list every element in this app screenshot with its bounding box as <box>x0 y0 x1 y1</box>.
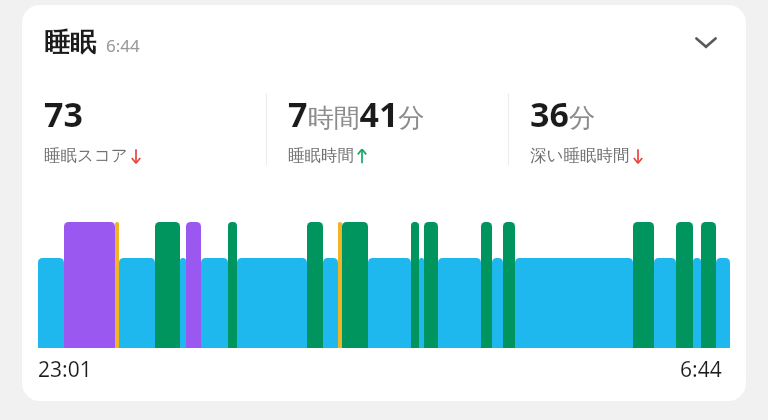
staticText: 睡眠スコア <box>44 145 128 166</box>
button[interactable]: 7時間41分 <box>288 91 518 166</box>
staticText: 7時間41分 <box>288 91 425 137</box>
button[interactable] <box>22 5 746 401</box>
button[interactable]: 折りたたむ <box>680 16 732 68</box>
staticText: 深い睡眠時間 <box>530 145 630 166</box>
staticText: 睡眠時間 <box>288 145 354 166</box>
staticText: 73 <box>44 91 83 137</box>
button[interactable]: 睡眠 <box>22 5 746 79</box>
staticText: 36分 <box>530 91 595 137</box>
staticText: 23:01 <box>38 355 92 384</box>
staticText: 睡眠 <box>44 26 96 59</box>
button[interactable]: 73 <box>44 91 274 166</box>
staticText: 6:44 <box>680 355 722 384</box>
button[interactable]: 36分 <box>530 91 746 166</box>
staticText: 6:44 <box>106 34 140 57</box>
